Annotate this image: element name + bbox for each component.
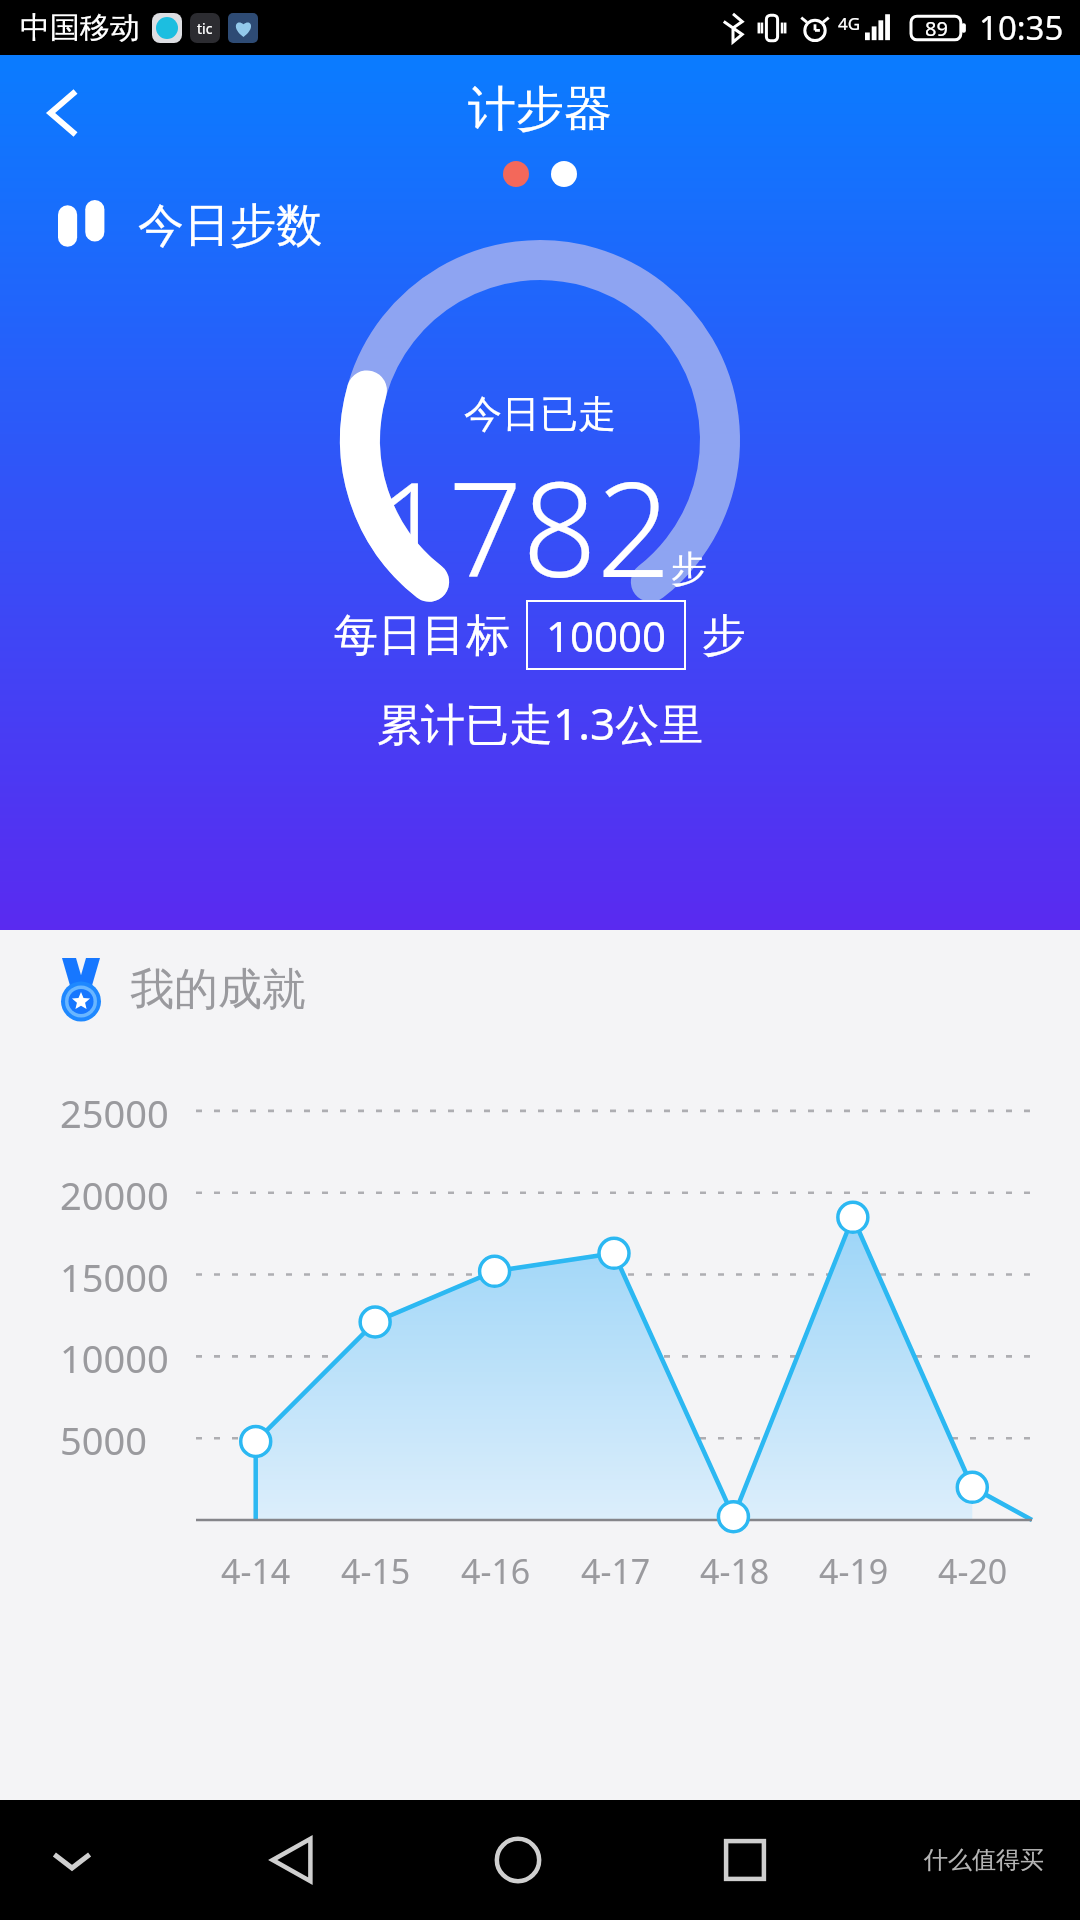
staticText: 我的成就: [130, 962, 306, 1017]
button[interactable]: Hide keyboard: [30, 1818, 114, 1902]
button[interactable]: Back: [244, 1812, 340, 1908]
staticText: 4-16: [461, 1548, 531, 1594]
staticText: 4-14: [221, 1548, 291, 1594]
staticText: 4-20: [938, 1548, 1008, 1594]
staticText: 累计已走1.3公里: [377, 693, 704, 753]
staticText: 中国移动: [20, 9, 140, 47]
staticText: 5000: [60, 1414, 147, 1466]
staticText: 今日步数: [138, 197, 322, 255]
staticText: 1782: [374, 438, 671, 615]
staticText: 计步器: [468, 79, 612, 139]
staticText: tic: [197, 19, 213, 38]
button[interactable]: 10000: [526, 600, 686, 670]
staticText: 10000: [60, 1332, 169, 1384]
button[interactable]: Recents: [697, 1812, 793, 1908]
staticText: 步: [702, 608, 746, 663]
staticText: 10000: [546, 607, 667, 664]
staticText: 什么值得买: [924, 1845, 1044, 1875]
staticText: 今日已走: [464, 390, 616, 438]
staticText: 10:35: [979, 5, 1064, 50]
staticText: 4-18: [700, 1548, 770, 1594]
staticText: 15000: [60, 1251, 169, 1303]
button[interactable]: Back: [22, 71, 106, 155]
button[interactable]: Home: [470, 1812, 566, 1908]
staticText: 20000: [60, 1169, 169, 1221]
staticText: 25000: [60, 1087, 169, 1139]
staticText: 4-19: [819, 1548, 889, 1594]
staticText: 4G: [838, 12, 861, 35]
button[interactable]: 什么值得买: [924, 1845, 1044, 1875]
staticText: 4-15: [341, 1548, 411, 1594]
staticText: 每日目标: [334, 608, 510, 663]
staticText: 4-17: [581, 1548, 651, 1594]
staticText: 步: [671, 546, 707, 591]
button[interactable]: 我的成就: [56, 958, 306, 1020]
staticText: 89: [925, 15, 948, 42]
